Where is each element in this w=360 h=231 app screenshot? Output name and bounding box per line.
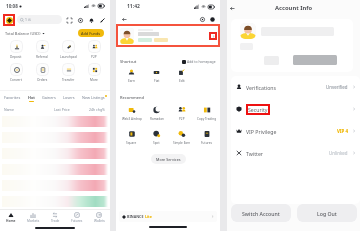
staticText: Wallets	[94, 219, 105, 223]
staticText: Unverified	[326, 84, 348, 90]
button[interactable]: Security	[231, 98, 360, 120]
staticText: Referral	[36, 55, 48, 59]
staticText: More	[90, 78, 98, 82]
staticText: Deposit	[10, 55, 22, 59]
staticText: 1 元	[25, 17, 32, 22]
staticText: Gainers	[42, 95, 56, 100]
button[interactable]: BINANCE	[122, 211, 214, 222]
button[interactable]: Notifications	[86, 15, 96, 25]
button[interactable]: Edit	[169, 69, 194, 83]
staticText: Twitter	[246, 150, 264, 157]
staticText: 24h chg%	[89, 107, 105, 112]
button[interactable]: Profile	[3, 14, 15, 26]
staticText: 10:08	[6, 3, 18, 9]
button[interactable]: Trade	[44, 210, 66, 225]
staticText: Security	[248, 106, 268, 113]
staticText: Favorites	[4, 95, 21, 100]
button[interactable]: New Listings	[82, 95, 107, 100]
button[interactable]: Deposit	[3, 40, 29, 59]
staticText: BINANCE	[127, 214, 144, 219]
button[interactable]: More Services	[156, 154, 181, 164]
button[interactable]: Support	[75, 15, 85, 25]
staticText: Square	[126, 141, 137, 145]
staticText: Orders	[37, 78, 48, 82]
staticText: Log Out	[317, 210, 337, 217]
staticText: P2P	[179, 117, 185, 121]
staticText: New Listings	[82, 95, 105, 100]
staticText: Transfer	[62, 78, 75, 82]
button[interactable]: Gainers	[42, 95, 56, 100]
button[interactable]: Log Out	[297, 204, 357, 222]
staticText: Verifications	[246, 84, 276, 91]
staticText: Trade	[51, 219, 60, 223]
staticText: Add Funds	[81, 31, 101, 36]
button[interactable]: 1 元	[20, 15, 59, 24]
button[interactable]: Hot	[28, 95, 35, 102]
button[interactable]: Launchpad	[55, 40, 81, 59]
button[interactable]: Ramadan	[144, 106, 169, 121]
button[interactable]: Transfer	[55, 63, 81, 82]
button[interactable]: Wallets	[88, 210, 110, 225]
button[interactable]: P2P	[169, 106, 194, 121]
staticText: Copy Trading	[197, 117, 217, 121]
staticText: Name	[4, 107, 14, 112]
button[interactable]: Simple Earn	[169, 130, 194, 145]
button[interactable]: Favorites	[4, 95, 21, 100]
button[interactable]: Open profile	[116, 24, 220, 47]
button[interactable]: Add Funds	[78, 29, 104, 37]
staticText: Launchpad	[60, 55, 77, 59]
button[interactable]: Fiat	[144, 69, 169, 83]
staticText: Account Info	[275, 4, 313, 12]
staticText: Switch Account	[242, 210, 280, 217]
staticText: Markets	[27, 219, 40, 223]
staticText: Shortcut	[120, 59, 137, 64]
button[interactable]: Referral	[29, 40, 55, 59]
staticText: Lite	[145, 214, 152, 219]
staticText: Last Price	[54, 107, 70, 112]
staticText: Futures	[71, 219, 83, 223]
staticText: Spot	[153, 141, 160, 145]
button[interactable]: More	[81, 63, 107, 82]
button[interactable]: Spot	[144, 130, 169, 145]
staticText: Ramadan	[150, 117, 164, 121]
staticText: Earn	[128, 79, 135, 83]
button[interactable]: Losers	[63, 95, 75, 100]
button[interactable]: Copy Trading	[194, 106, 219, 121]
button[interactable]: VIP Privilege	[231, 120, 360, 142]
button[interactable]: Futures	[66, 210, 88, 225]
button[interactable]: Switch Account	[231, 204, 291, 222]
staticText: Futures	[201, 141, 212, 145]
button[interactable]: Earn	[119, 69, 144, 83]
staticText: Web3 Airdrop	[122, 117, 142, 121]
button[interactable]: Orders	[29, 63, 55, 82]
button[interactable]: Web3 Airdrop	[119, 106, 144, 121]
staticText: Edit	[179, 79, 185, 83]
button[interactable]: Twitter	[231, 142, 360, 164]
staticText: Recommend	[120, 95, 145, 100]
button[interactable]: Markets	[22, 210, 44, 225]
staticText: Add to homepage	[187, 59, 216, 64]
button[interactable]: Open profile	[209, 32, 217, 40]
staticText: Fiat	[154, 79, 160, 83]
staticText: VIP 4	[337, 128, 348, 134]
button[interactable]: Convert	[3, 63, 29, 82]
staticText: 11:42	[127, 3, 140, 10]
button[interactable]: Back	[120, 15, 128, 23]
button[interactable]: Verifications	[231, 76, 360, 98]
button[interactable]: Back	[228, 4, 237, 13]
button[interactable]: P2P	[81, 40, 107, 59]
button[interactable]: Support	[198, 15, 206, 23]
staticText: Convert	[10, 78, 22, 82]
button[interactable]: Info	[208, 15, 216, 23]
staticText: Simple Earn	[173, 141, 191, 145]
button[interactable]: Futures	[194, 130, 219, 145]
staticText: Hot	[28, 95, 35, 100]
button[interactable]: Download	[97, 15, 107, 25]
staticText: Home	[6, 219, 16, 223]
staticText: Losers	[63, 95, 75, 100]
staticText: P2P	[91, 55, 97, 59]
staticText: More Services	[156, 157, 181, 162]
button[interactable]: Scan	[64, 15, 74, 25]
button[interactable]: Home	[0, 210, 22, 225]
button[interactable]: Square	[119, 130, 144, 145]
